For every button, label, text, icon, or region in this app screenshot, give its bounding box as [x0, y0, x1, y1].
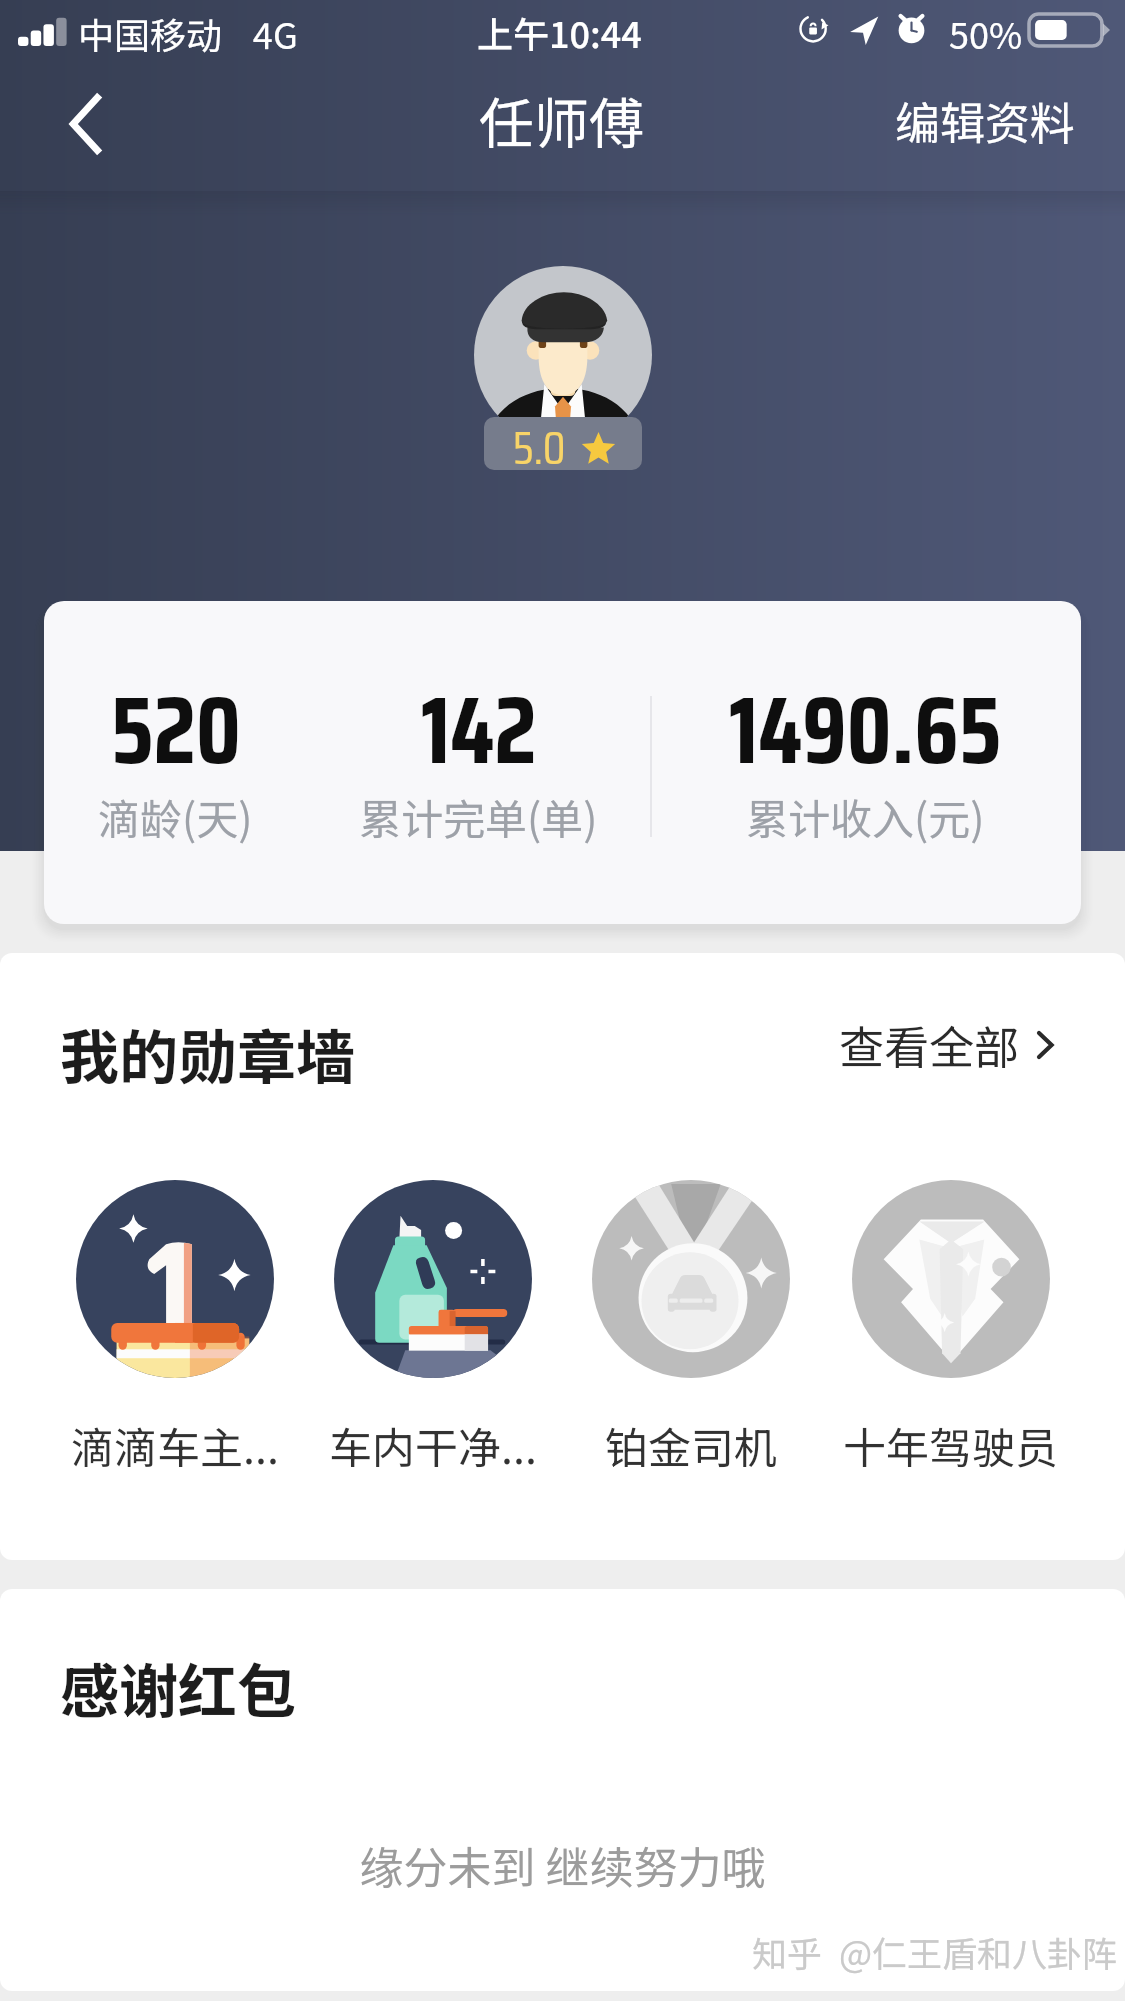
staticText: 5.0	[513, 417, 566, 464]
staticText: 1490.65	[729, 656, 1002, 804]
button[interactable]: Profile photo	[474, 266, 652, 444]
button[interactable]: 1490.65	[695, 650, 1035, 860]
staticText: 上午10:44	[477, 6, 642, 58]
staticText: 十年驾驶员	[843, 1414, 1058, 1470]
staticText: 查看全部	[839, 1012, 1020, 1077]
staticText: 滴滴车主...	[71, 1414, 279, 1470]
staticText: 编辑资料	[895, 88, 1076, 153]
staticText: 知乎	[752, 1926, 823, 1977]
button[interactable]: 142	[308, 650, 648, 860]
staticText: 142	[421, 656, 537, 804]
button[interactable]: 十年驾驶员	[821, 1180, 1079, 1470]
staticText: 累计收入(元)	[746, 786, 985, 847]
staticText: 任师傅	[479, 80, 645, 160]
staticText: 我的勋章墙	[60, 1011, 356, 1096]
staticText: 缘分未到 继续努力哦	[0, 1833, 1125, 1897]
staticText: 感谢红包	[60, 1645, 297, 1730]
staticText: 中国移动	[78, 7, 223, 59]
staticText: 50%	[949, 7, 1023, 59]
button[interactable]: 滴滴车主...	[46, 1180, 304, 1470]
staticText: 4G	[253, 7, 298, 59]
staticText: 520	[111, 656, 241, 804]
button[interactable]: Back	[20, 59, 150, 188]
staticText: 累计完单(单)	[359, 786, 598, 847]
button[interactable]: 编辑资料	[875, 70, 1096, 171]
button[interactable]: 520	[44, 650, 345, 860]
button[interactable]: 车内干净...	[304, 1180, 562, 1470]
staticText: 滴龄(天)	[98, 786, 253, 847]
button[interactable]: 铂金司机	[562, 1180, 820, 1470]
staticText: @仁王盾和八卦阵	[839, 1926, 1118, 1977]
button[interactable]: 查看全部	[829, 1000, 1070, 1089]
staticText: 铂金司机	[605, 1414, 777, 1470]
staticText: 车内干净...	[329, 1414, 537, 1470]
